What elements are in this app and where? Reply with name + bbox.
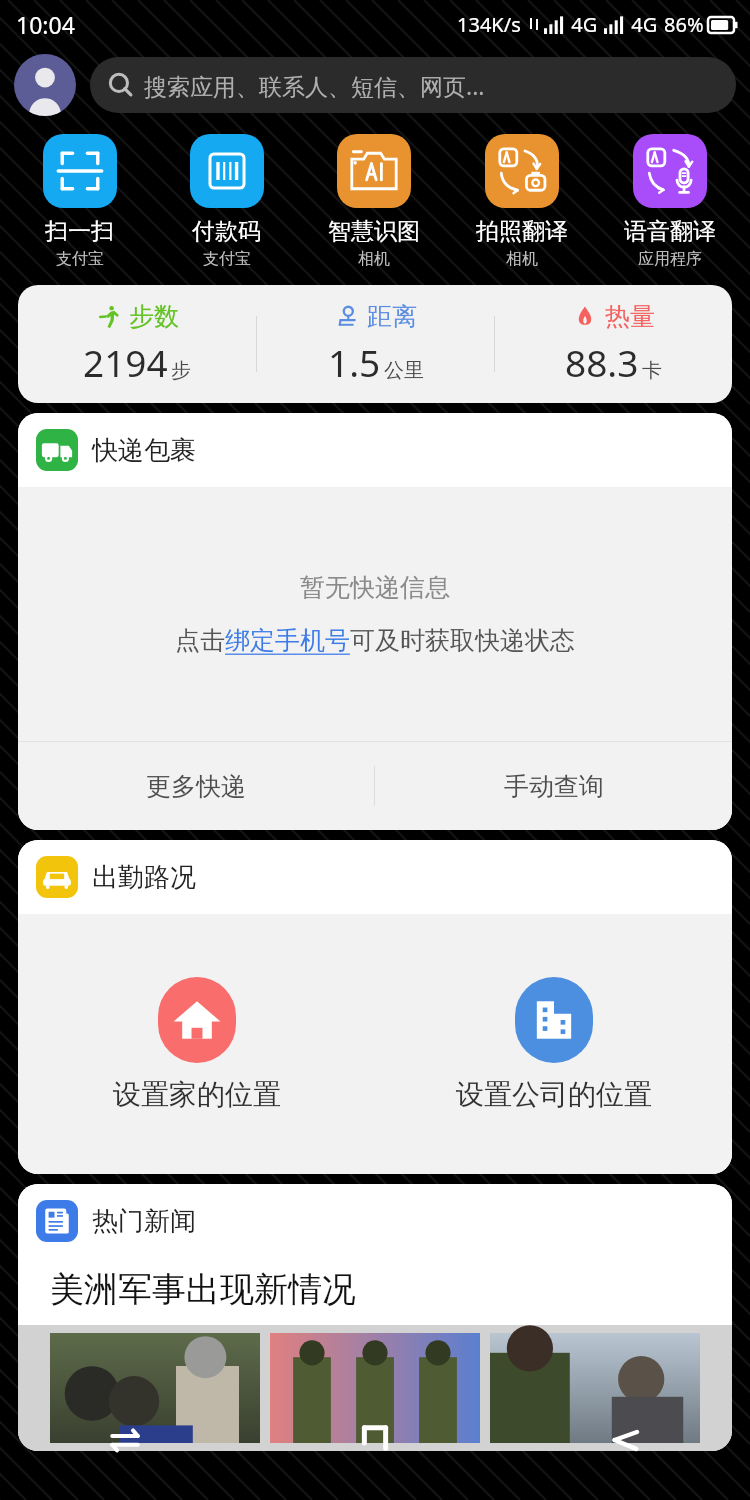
staticText: 支付宝 bbox=[56, 249, 104, 269]
staticText: 步数 bbox=[129, 301, 179, 332]
staticText: 应用程序 bbox=[638, 249, 702, 269]
staticText: 拍照翻译 bbox=[476, 217, 568, 246]
button[interactable]: 步数 bbox=[18, 285, 732, 403]
staticText: 绑定手机号 bbox=[225, 625, 350, 656]
staticText: 点击 bbox=[175, 625, 225, 656]
staticText: 卡 bbox=[642, 358, 662, 383]
staticText: 134K/s bbox=[457, 11, 521, 38]
staticText: 4G bbox=[626, 11, 658, 38]
button[interactable] bbox=[50, 1333, 700, 1443]
staticText: 快递包裹 bbox=[92, 434, 196, 467]
staticText: 距离 bbox=[367, 301, 417, 332]
button[interactable]: Back bbox=[500, 1380, 750, 1500]
staticText: 支付宝 bbox=[203, 249, 251, 269]
staticText: 公里 bbox=[384, 358, 424, 383]
button[interactable]: 设置公司的位置 bbox=[375, 977, 732, 1112]
staticText: 10:04 bbox=[16, 9, 75, 40]
staticText: 热量 bbox=[605, 301, 655, 332]
button[interactable]: Profile bbox=[14, 54, 76, 116]
button[interactable]: 手动查询 bbox=[375, 742, 732, 830]
button[interactable]: 出勤路况 bbox=[18, 840, 732, 914]
staticText: 4G bbox=[566, 11, 598, 38]
staticText: 88.3 bbox=[565, 337, 639, 387]
button[interactable]: 快递包裹 bbox=[18, 413, 732, 487]
staticText: 设置家的位置 bbox=[113, 1077, 281, 1112]
button[interactable]: 拍照翻译 bbox=[448, 130, 596, 273]
staticText: 语音翻译 bbox=[624, 217, 716, 246]
staticText: 2194 bbox=[83, 337, 168, 387]
staticText: 1.5 bbox=[328, 337, 381, 387]
button[interactable]: 更多快递 bbox=[18, 742, 374, 830]
staticText: 步 bbox=[171, 358, 191, 383]
staticText: 美洲军事出现新情况 bbox=[50, 1268, 356, 1311]
staticText: 扫一扫 bbox=[45, 217, 114, 246]
button[interactable]: 智慧识图 bbox=[300, 130, 448, 273]
button[interactable]: Home bbox=[250, 1380, 500, 1500]
staticText: 手动查询 bbox=[504, 771, 604, 802]
staticText: 更多快递 bbox=[146, 771, 246, 802]
staticText: 搜索应用、联系人、短信、网页... bbox=[144, 70, 485, 101]
staticText: 出勤路况 bbox=[92, 861, 196, 894]
staticText: 相机 bbox=[358, 249, 390, 269]
staticText: 设置公司的位置 bbox=[456, 1077, 652, 1112]
button[interactable]: 扫一扫 bbox=[6, 130, 153, 273]
staticText: 热门新闻 bbox=[92, 1205, 196, 1238]
button[interactable]: 热门新闻 bbox=[18, 1184, 732, 1258]
button[interactable]: 搜索应用、联系人、短信、网页... bbox=[90, 57, 736, 113]
button[interactable]: 付款码 bbox=[153, 130, 300, 273]
staticText: 相机 bbox=[506, 249, 538, 269]
staticText: 付款码 bbox=[192, 217, 261, 246]
staticText: 可及时获取快递状态 bbox=[350, 625, 575, 656]
button[interactable]: 点击 bbox=[175, 625, 575, 656]
staticText: 86% bbox=[664, 11, 704, 38]
button[interactable]: 设置家的位置 bbox=[18, 977, 375, 1112]
button[interactable]: Recent apps bbox=[0, 1380, 250, 1500]
button[interactable]: 语音翻译 bbox=[596, 130, 744, 273]
staticText: 智慧识图 bbox=[328, 217, 420, 246]
staticText: 暂无快递信息 bbox=[300, 572, 450, 603]
